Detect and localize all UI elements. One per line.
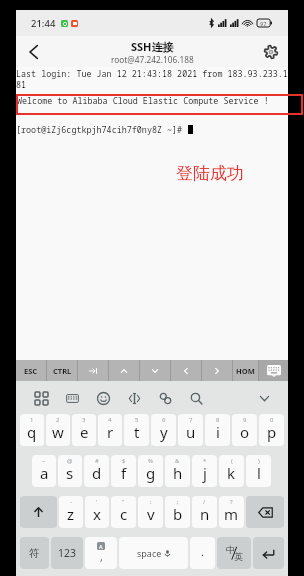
staticText: u [186,422,196,442]
button[interactable]: 7 [178,414,203,446]
staticText: ( [231,457,233,465]
staticText: 6 [162,416,166,424]
button[interactable]: Up [109,360,139,381]
staticText: l [257,463,261,483]
button[interactable]: ~ [32,455,56,487]
staticText: 符 [29,547,40,560]
button[interactable]: Cursor [124,388,144,408]
button[interactable]: & [165,455,190,487]
button[interactable]: Hide keyboard [259,360,288,381]
staticText: : [150,498,152,506]
button[interactable]: Right [202,360,232,381]
staticText: root@47.242.106.188 [111,54,194,65]
button[interactable]: 9 [232,414,257,446]
staticText: 2 [56,416,60,424]
button[interactable]: A [85,537,117,569]
button[interactable]: Collapse [254,388,274,408]
button[interactable]: 5 [124,414,149,446]
staticText: k [227,463,236,483]
button[interactable]: Settings [254,36,288,67]
button[interactable]: 6 [151,414,176,446]
staticText: Last login: Tue Jan 12 21:43:18 2021 fro… [16,68,288,79]
button[interactable]: ( [219,455,244,487]
staticText: ) [258,457,260,465]
staticText: 1 [30,416,34,424]
staticText: 3 [82,416,86,424]
staticText: Welcome to Alibaba Cloud Elastic Compute… [17,95,269,106]
button[interactable]: ) [246,455,271,487]
button[interactable]: 3 [72,414,96,446]
button[interactable]: 中 [217,537,251,569]
staticText: s [66,463,74,483]
button[interactable]: CTRL [47,360,77,381]
staticText: ; [177,498,179,506]
staticText: m [224,504,239,524]
staticText: 中 [226,544,235,555]
button[interactable]: ESC [16,360,46,381]
button[interactable]: 2 [46,414,70,446]
staticText: CTRL [53,366,72,376]
staticText: q [27,422,37,442]
button[interactable]: 8 [205,414,230,446]
button[interactable]: : [138,496,163,528]
button[interactable]: " [111,496,136,528]
staticText: 97 [260,20,267,27]
staticText: ? [230,498,233,506]
staticText: - [70,498,72,506]
staticText: 8 [216,416,220,424]
button[interactable]: % [138,455,163,487]
staticText: 5 [135,416,139,424]
button[interactable]: $ [111,455,136,487]
button[interactable]: Apps [31,388,51,408]
staticText: , [100,550,103,564]
button[interactable]: . [190,537,215,569]
button[interactable]: ; [165,496,190,528]
staticText: g [146,463,156,483]
button[interactable]: / [192,496,217,528]
button[interactable]: @ [58,455,82,487]
staticText: @ [67,457,73,465]
button[interactable]: 符 [20,537,49,569]
staticText: . [201,544,204,559]
button[interactable]: Down [140,360,170,381]
button[interactable]: 1 [20,414,44,446]
staticText: z [67,504,75,524]
staticText: p [267,422,277,442]
staticText: n [200,504,210,524]
staticText: f [121,463,127,483]
button[interactable]: Search [186,388,206,408]
button[interactable]: Attach [155,388,175,408]
button[interactable]: 0 [259,414,284,446]
button[interactable]: - [59,496,83,528]
button[interactable]: ' [85,496,109,528]
button[interactable]: ? [219,496,244,528]
staticText: % [148,457,153,465]
button[interactable]: Backspace [246,496,284,528]
staticText: b [173,504,183,524]
staticText: 0 [270,416,274,424]
button[interactable]: Keyboard [62,388,82,408]
button[interactable]: 123 [51,537,83,569]
button[interactable]: Enter [253,537,284,569]
staticText: 123 [58,546,77,560]
button[interactable]: Shift [20,496,57,528]
staticText: space [137,547,162,559]
button[interactable]: 4 [98,414,122,446]
staticText: y [160,422,168,442]
staticText: 21:44 [31,17,56,30]
button[interactable]: Tab [78,360,108,381]
staticText: 7 [189,416,193,424]
staticText: ESC [24,366,38,376]
button[interactable]: Back [16,36,50,67]
button[interactable]: HOM [233,360,258,381]
staticText: A [99,543,103,550]
button[interactable]: space [119,537,188,569]
staticText: w [52,422,64,442]
button[interactable]: Left [171,360,201,381]
button[interactable]: * [192,455,217,487]
button[interactable]: Emoji [93,388,113,408]
button[interactable]: # [84,455,109,487]
staticText: t [134,422,140,442]
staticText: # [95,457,99,465]
staticText: ' [96,498,98,506]
